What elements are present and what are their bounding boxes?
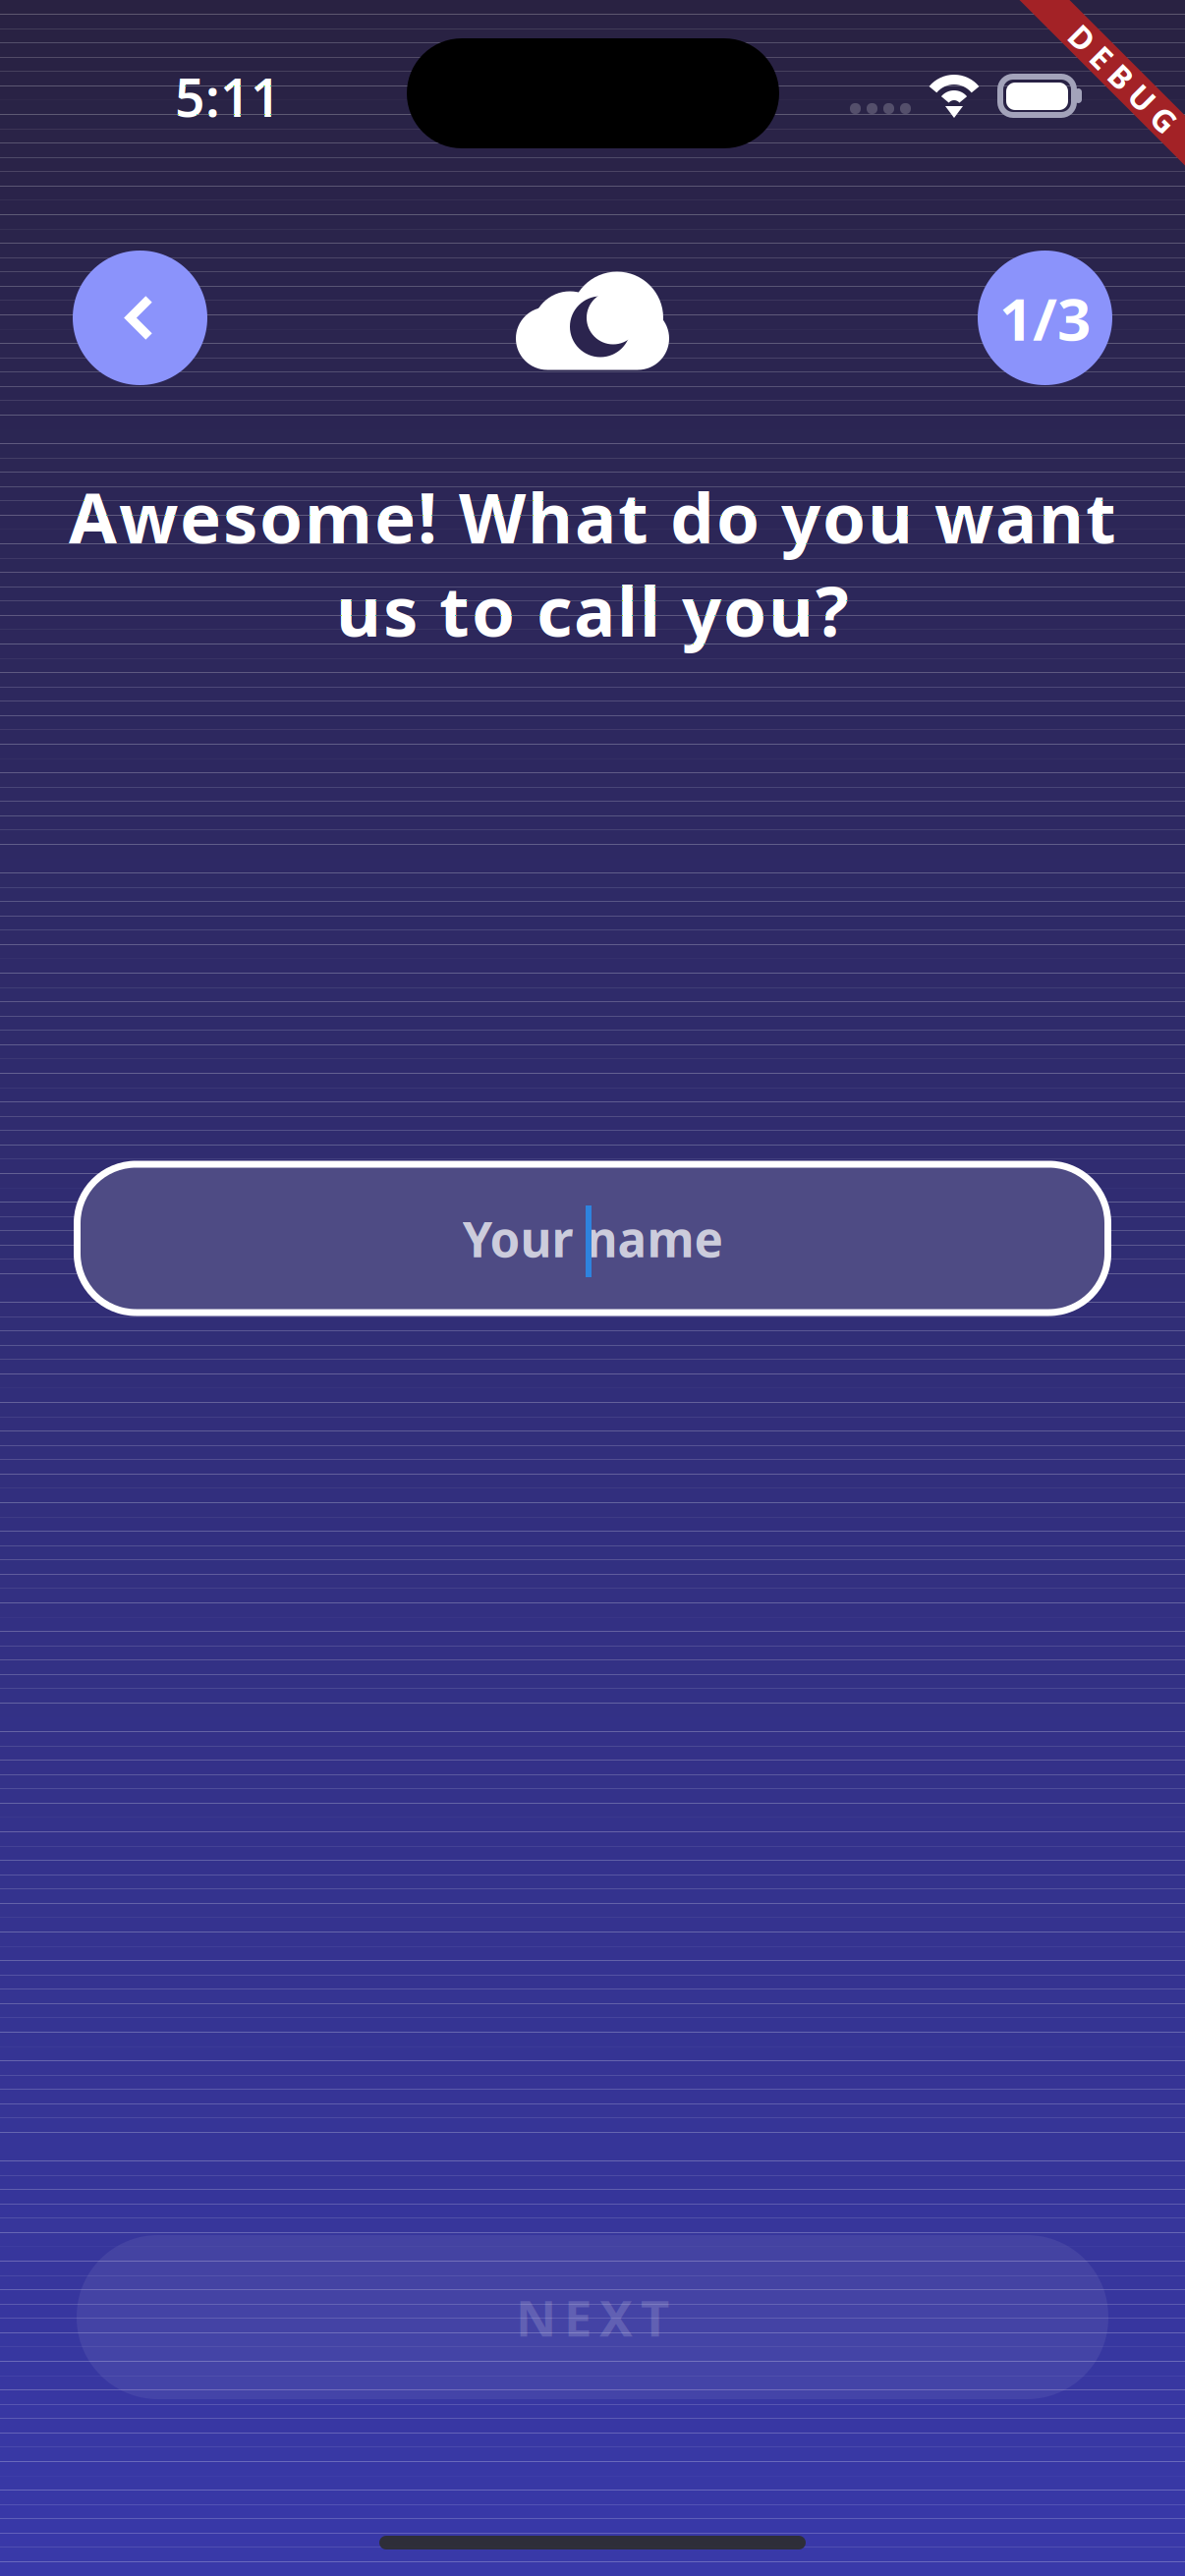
button[interactable]: Your name — [77, 1164, 1108, 1313]
staticText: D E B U G — [1054, 58, 1185, 100]
staticText: NEXT — [516, 2284, 669, 2350]
staticText: Your name — [462, 1206, 723, 1271]
staticText: 1/3 — [999, 279, 1091, 357]
staticText: 5:11 — [175, 62, 281, 131]
staticText: us to call you? — [336, 564, 849, 656]
button[interactable]: Back — [73, 251, 207, 385]
staticText: Awesome! What do you want — [69, 470, 1116, 562]
button[interactable]: NEXT — [77, 2235, 1108, 2399]
